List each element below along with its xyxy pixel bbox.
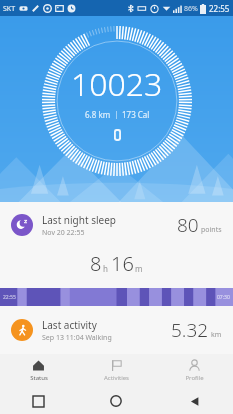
staticText: Activities	[104, 374, 129, 382]
staticText: m	[135, 263, 143, 274]
staticText: 173 Cal	[122, 109, 150, 120]
staticText: 5.32	[171, 317, 209, 343]
staticText: 86%	[184, 4, 198, 14]
staticText: Sep 13 11:04 Walking	[42, 333, 112, 343]
staticText: 16	[111, 250, 134, 277]
staticText: Profile	[185, 374, 204, 382]
staticText: h	[103, 263, 108, 274]
button[interactable]: Activities	[77, 354, 155, 388]
staticText: Last activity	[42, 318, 97, 332]
staticText: SKT	[3, 4, 16, 14]
staticText: 80	[177, 212, 199, 238]
button[interactable]: Profile	[155, 354, 233, 388]
button[interactable]: Last night sleep	[0, 202, 233, 288]
button[interactable]: Home	[77, 388, 155, 414]
staticText: 07:30	[217, 294, 230, 301]
staticText: km	[211, 330, 222, 340]
staticText: Last night sleep	[42, 213, 116, 227]
staticText: 10023	[71, 62, 163, 106]
staticText: 22:55	[209, 3, 230, 14]
staticText: 22:55	[3, 294, 16, 301]
button[interactable]: Last activity	[0, 306, 233, 354]
staticText: 8	[90, 250, 102, 277]
button[interactable]: Status	[0, 354, 77, 388]
button[interactable]: Back	[155, 388, 233, 414]
staticText: points	[201, 225, 222, 235]
staticText: 6.8 km	[85, 109, 111, 120]
staticText: Nov 20 22:55	[42, 228, 85, 238]
button[interactable]: Recent apps	[0, 388, 77, 414]
staticText: Status	[30, 374, 48, 382]
